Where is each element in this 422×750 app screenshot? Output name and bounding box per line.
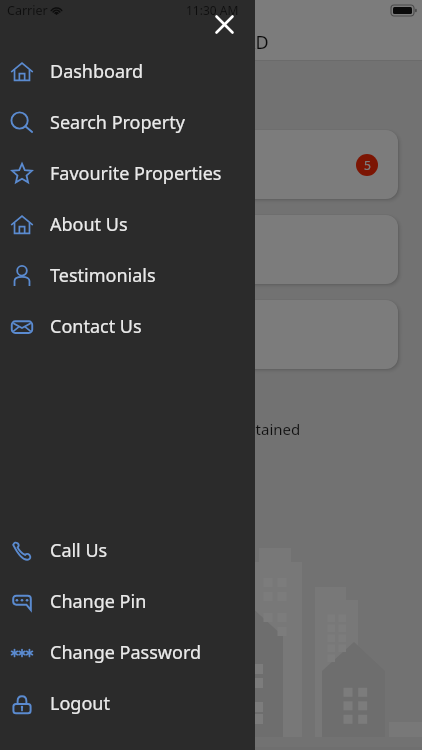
staticText: Call Us: [50, 538, 108, 563]
staticText: Change Pin: [50, 589, 147, 614]
button[interactable]: [24, 300, 398, 369]
button[interactable]: 5: [24, 130, 398, 199]
staticText: Dashboard: [50, 59, 144, 84]
button[interactable]: Contact Us: [0, 301, 255, 352]
staticText: Change Password: [50, 640, 202, 665]
button[interactable]: About Us: [0, 199, 255, 250]
staticText: 11:30 AM: [186, 2, 239, 18]
button[interactable]: Change Pin: [0, 576, 255, 627]
button[interactable]: Dashboard: [0, 46, 255, 97]
button[interactable]: [24, 215, 398, 284]
staticText: Testimonials: [50, 263, 156, 288]
staticText: 5: [364, 157, 371, 173]
button[interactable]: Favourite Properties: [0, 148, 255, 199]
button[interactable]: Call Us: [0, 525, 255, 576]
staticText: Favourite Properties: [50, 161, 222, 186]
button[interactable]: Change Password: [0, 627, 255, 678]
button[interactable]: Close menu: [208, 8, 240, 40]
button[interactable]: Search Property: [0, 97, 255, 148]
button[interactable]: Testimonials: [0, 250, 255, 301]
staticText: Carrier: [7, 2, 48, 19]
staticText: About Us: [50, 212, 128, 237]
staticText: DASHBOARD: [160, 30, 269, 55]
staticText: Contact Us: [50, 314, 142, 339]
staticText: Search Property: [50, 110, 185, 135]
staticText: Properties Retained: [161, 419, 301, 439]
button[interactable]: Logout: [0, 678, 255, 729]
staticText: Logout: [50, 691, 110, 716]
